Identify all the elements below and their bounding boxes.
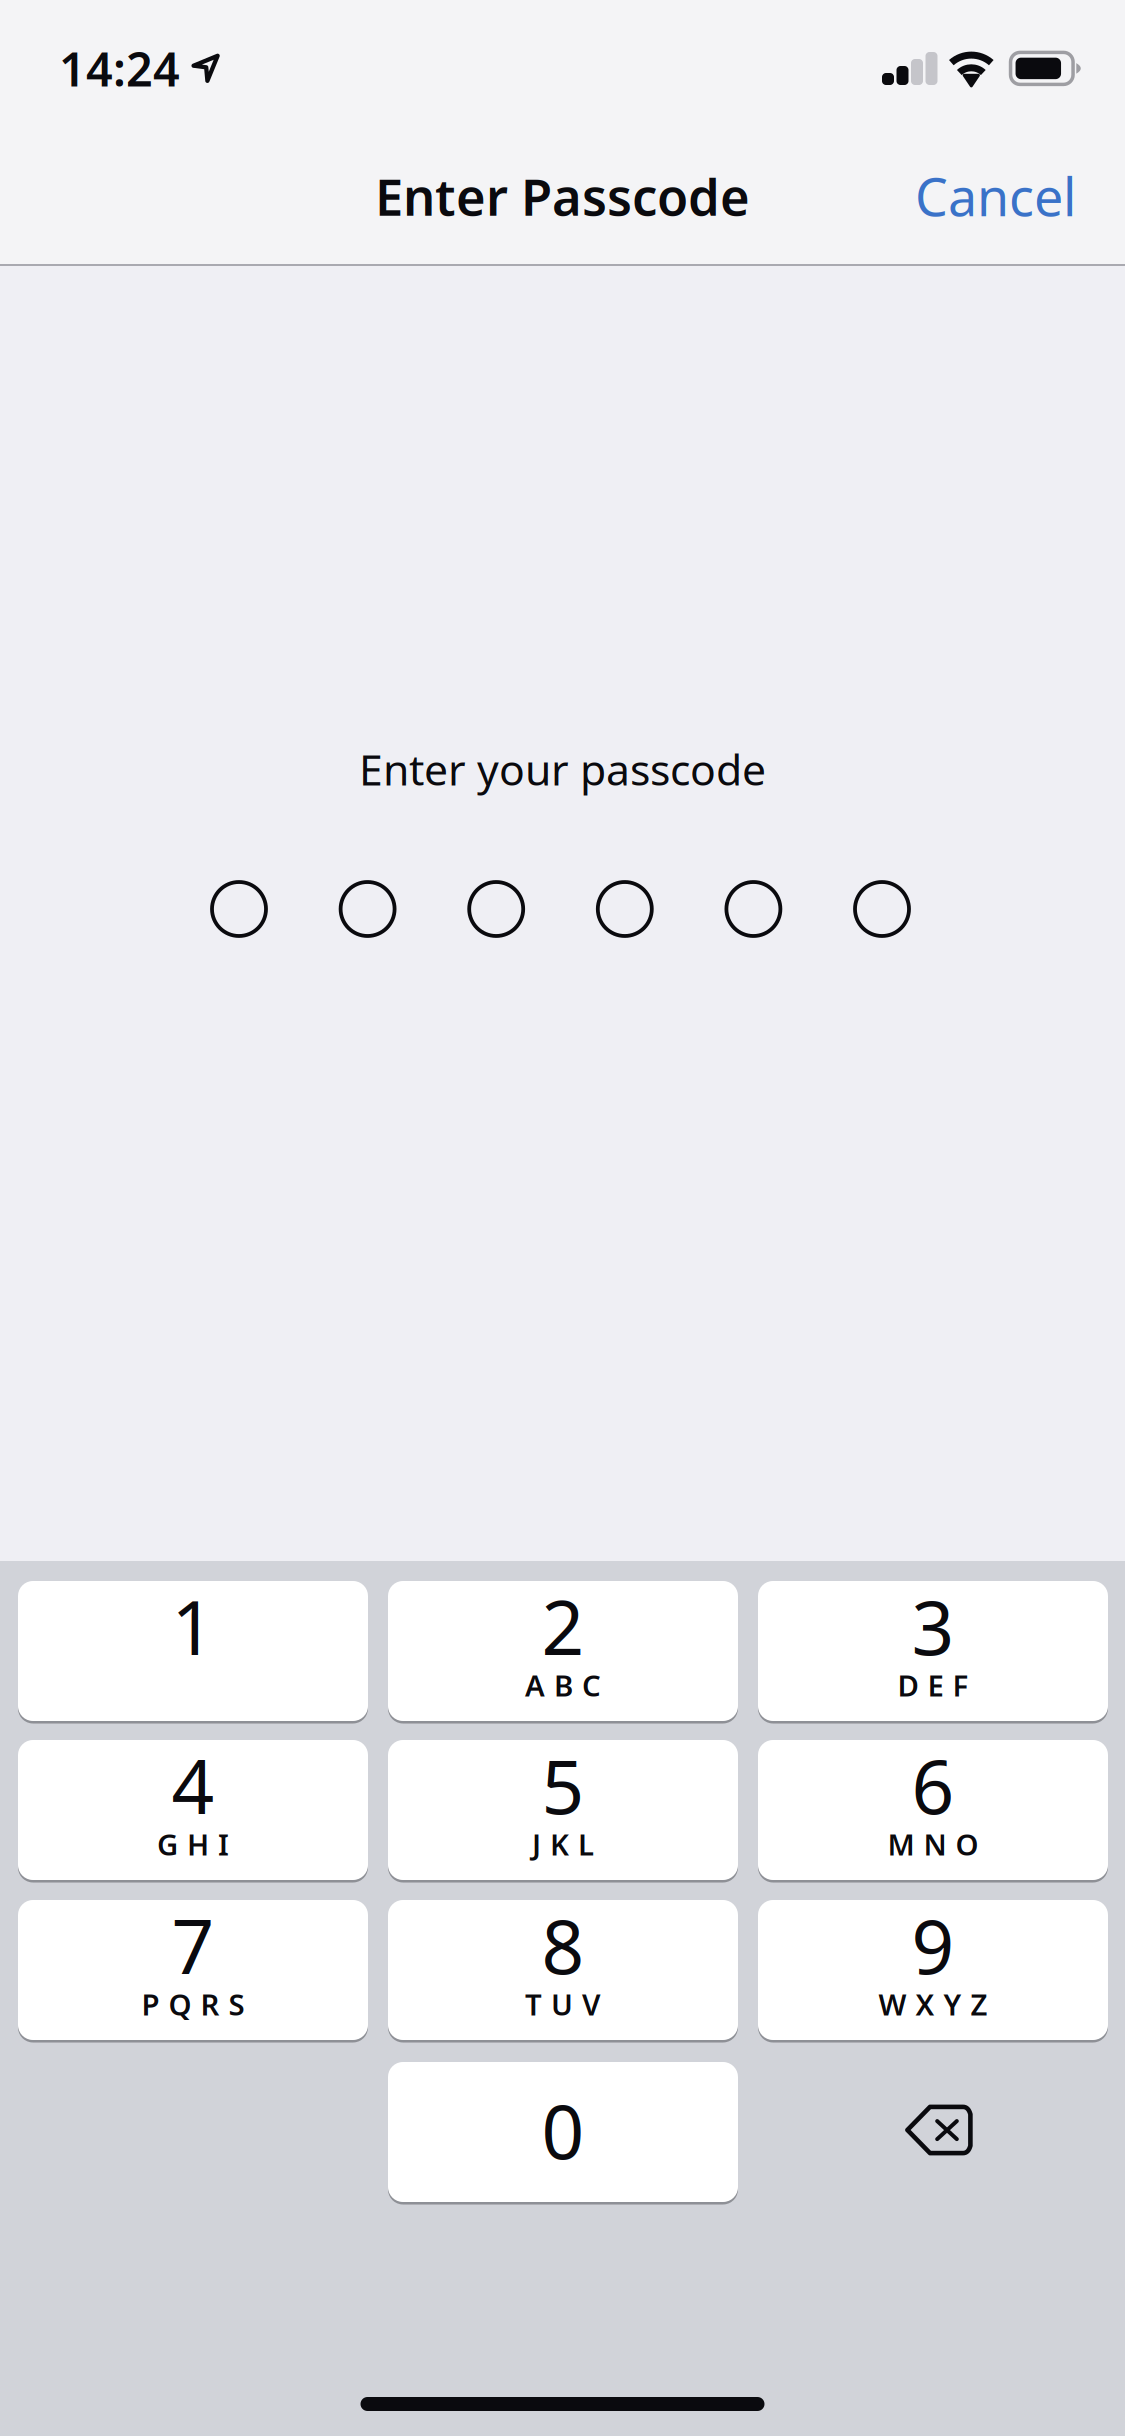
button[interactable]: 5	[388, 1740, 738, 1880]
button[interactable]: 6	[758, 1740, 1108, 1880]
button[interactable]: 0	[388, 2062, 738, 2202]
staticText: 1	[171, 1576, 214, 1676]
button[interactable]: 9	[758, 1900, 1108, 2040]
staticText: 3	[911, 1576, 954, 1676]
staticText: Enter your passcode	[359, 741, 766, 797]
staticText: 2	[541, 1576, 584, 1676]
button[interactable]: 8	[388, 1900, 738, 2040]
staticText: JKL	[532, 1824, 594, 1863]
button[interactable]: 3	[758, 1581, 1108, 1721]
staticText: MNO	[887, 1824, 978, 1863]
staticText: 14:24	[59, 37, 180, 99]
staticText: 7	[171, 1895, 214, 1995]
staticText: Cancel	[915, 161, 1076, 231]
staticText: 0	[541, 2080, 584, 2180]
staticText: 9	[911, 1895, 954, 1995]
staticText: 5	[541, 1735, 584, 1835]
staticText: 4	[171, 1735, 214, 1835]
button[interactable]: Cancel	[856, 130, 1076, 262]
staticText: 8	[541, 1895, 584, 1995]
staticText: 6	[911, 1735, 954, 1835]
staticText: WXYZ	[878, 1984, 987, 2023]
staticText: Enter Passcode	[375, 162, 750, 230]
staticText: ABC	[525, 1665, 601, 1704]
staticText: PQRS	[141, 1984, 244, 2023]
button[interactable]: 4	[18, 1740, 368, 1880]
staticText: GHI	[157, 1824, 229, 1863]
button[interactable]: 7	[18, 1900, 368, 2040]
staticText: DEF	[897, 1665, 968, 1704]
button[interactable]: 1	[18, 1581, 368, 1721]
button[interactable]: 2	[388, 1581, 738, 1721]
staticText: TUV	[525, 1984, 601, 2023]
button[interactable]: Delete	[764, 2060, 1114, 2200]
